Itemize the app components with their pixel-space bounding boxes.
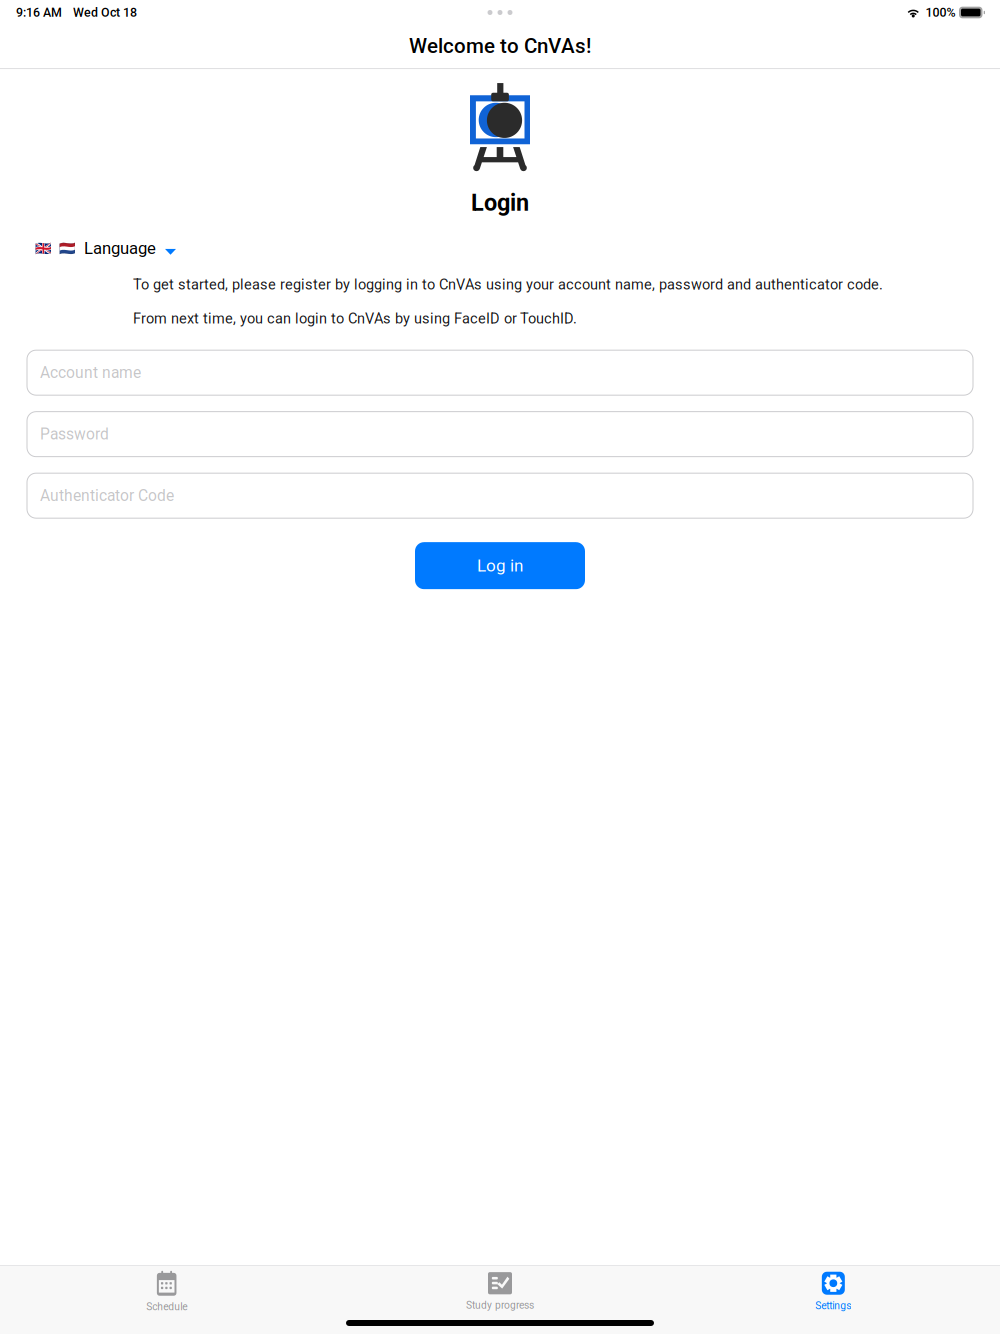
button[interactable]: Authenticator Code xyxy=(27,473,973,518)
staticText: Account name xyxy=(40,363,141,382)
staticText: 9:16 AM xyxy=(16,5,62,20)
staticText: From next time, you can login to CnVAs b… xyxy=(133,310,577,327)
button[interactable]: Log in xyxy=(415,542,585,589)
staticText: Login xyxy=(471,189,529,217)
staticText: Schedule xyxy=(146,1301,187,1313)
staticText: Password xyxy=(40,425,109,443)
button[interactable]: Password xyxy=(27,412,973,457)
staticText: 🇬🇧 xyxy=(35,240,52,256)
button[interactable]: Study progress xyxy=(333,1265,667,1319)
staticText: 🇳🇱 xyxy=(59,240,76,256)
staticText: Log in xyxy=(477,556,523,576)
button[interactable]: Schedule xyxy=(0,1265,333,1319)
staticText: Welcome to CnVAs! xyxy=(409,34,591,58)
button[interactable]: 🇬🇧 xyxy=(35,239,176,258)
staticText: Language xyxy=(84,239,156,258)
staticText: Authenticator Code xyxy=(40,486,174,505)
staticText: Settings xyxy=(815,1300,851,1312)
staticText: 100% xyxy=(925,5,955,20)
staticText: Wed Oct 18 xyxy=(73,5,137,20)
button[interactable]: Settings xyxy=(667,1265,1000,1319)
button[interactable]: Account name xyxy=(27,350,973,395)
staticText: Study progress xyxy=(466,1299,534,1311)
staticText: To get started, please register by loggi… xyxy=(133,276,883,293)
